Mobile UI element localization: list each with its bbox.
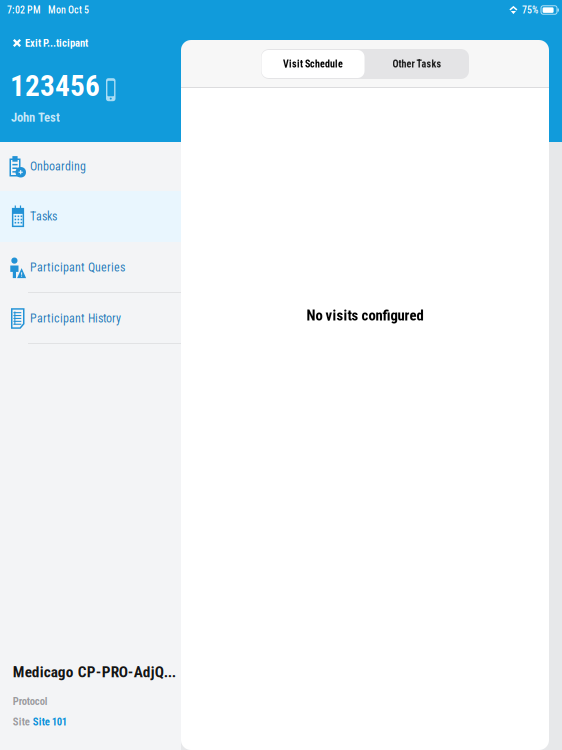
staticText: Medicago CP-PRO-AdjQ...	[13, 663, 176, 681]
button[interactable]: Tasks	[0, 191, 181, 242]
button[interactable]: Exit P...ticipant	[0, 36, 181, 50]
staticText: 7:02 PM	[7, 4, 41, 16]
staticText: 123456	[10, 69, 100, 103]
button[interactable]: Participant History	[0, 293, 181, 344]
staticText: Protocol	[13, 695, 48, 707]
button[interactable]: Participant Queries	[0, 242, 181, 293]
staticText: John Test	[11, 110, 60, 125]
staticText: Tasks	[30, 209, 57, 224]
staticText: Onboarding	[30, 159, 86, 174]
staticText: Visit Schedule	[283, 58, 343, 70]
staticText: Participant Queries	[30, 260, 125, 275]
staticText: Site 101	[33, 715, 67, 728]
button[interactable]: Visit Schedule	[261, 49, 365, 79]
staticText: 75%	[522, 4, 538, 16]
staticText: Mon Oct 5	[48, 4, 89, 16]
staticText: No visits configured	[306, 307, 423, 324]
button[interactable]: Onboarding	[0, 142, 181, 191]
staticText: Exit P...ticipant	[25, 37, 88, 49]
staticText: Participant History	[30, 311, 121, 326]
staticText: Other Tasks	[392, 58, 441, 70]
button[interactable]: Other Tasks	[365, 49, 469, 79]
staticText: Site	[13, 715, 30, 728]
